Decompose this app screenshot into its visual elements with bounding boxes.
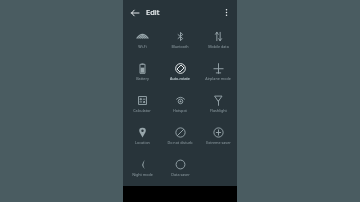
button[interactable]: Data saver bbox=[161, 152, 199, 184]
staticText: Airplane mode bbox=[205, 76, 231, 81]
staticText: Hotspot bbox=[173, 108, 187, 113]
staticText: Do not disturb bbox=[167, 140, 193, 145]
staticText: Location bbox=[135, 140, 150, 145]
button[interactable]: Airplane mode bbox=[199, 56, 237, 88]
staticText: Extreme saver bbox=[206, 140, 231, 145]
staticText: Mobile data bbox=[208, 44, 229, 49]
staticText: Auto-rotate bbox=[170, 76, 190, 81]
button[interactable]: Flashlight bbox=[199, 88, 237, 120]
button[interactable]: Do not disturb bbox=[161, 120, 199, 152]
button[interactable]: Bluetooth bbox=[161, 24, 199, 56]
staticText: Wi-Fi bbox=[138, 44, 147, 49]
button[interactable]: Battery bbox=[123, 56, 161, 88]
button[interactable]: Wi-Fi bbox=[123, 24, 161, 56]
button[interactable]: Location bbox=[123, 120, 161, 152]
button[interactable]: Extreme saver bbox=[199, 120, 237, 152]
button[interactable]: Auto-rotate bbox=[161, 56, 199, 88]
staticText: Flashlight bbox=[210, 108, 227, 113]
button[interactable]: More options bbox=[220, 6, 233, 19]
button[interactable]: Mobile data bbox=[199, 24, 237, 56]
staticText: Calculator bbox=[133, 108, 151, 113]
button[interactable]: Hotspot bbox=[161, 88, 199, 120]
staticText: Edit bbox=[146, 7, 160, 17]
button[interactable]: Back bbox=[128, 6, 141, 19]
staticText: Data saver bbox=[171, 172, 190, 177]
button[interactable]: Night mode bbox=[123, 152, 161, 184]
staticText: Battery bbox=[136, 76, 149, 81]
staticText: Night mode bbox=[132, 172, 153, 177]
staticText: Bluetooth bbox=[171, 44, 189, 49]
button[interactable]: Calculator bbox=[123, 88, 161, 120]
